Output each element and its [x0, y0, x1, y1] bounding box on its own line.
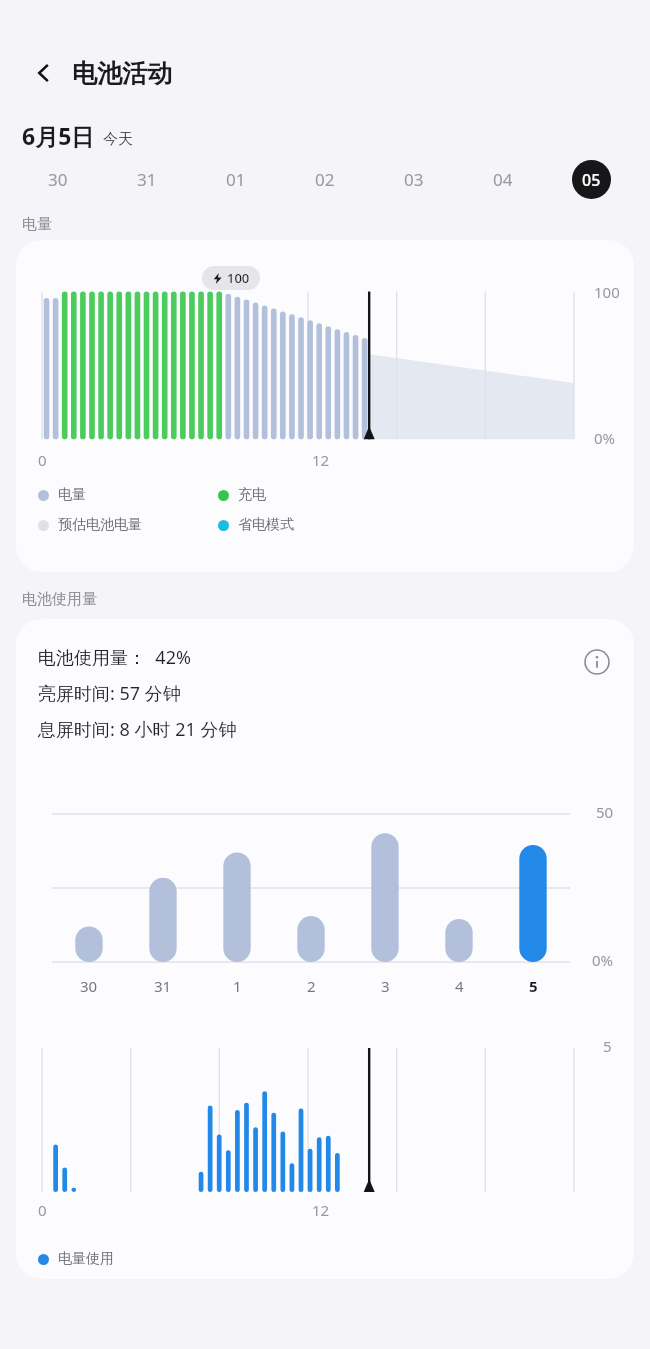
staticText: 电量使用: [58, 1250, 114, 1268]
staticText: 省电模式: [238, 516, 294, 534]
button[interactable]: 05: [547, 153, 636, 205]
staticText: 息屏时间: 8 小时 21 分钟: [38, 717, 237, 742]
staticText: 电池活动: [72, 58, 172, 89]
staticText: 31: [154, 976, 172, 996]
button[interactable]: 100: [16, 240, 634, 572]
staticText: 0%: [594, 428, 616, 448]
staticText: 30: [48, 168, 68, 191]
staticText: 电量: [58, 486, 86, 504]
button[interactable]: 03: [369, 153, 458, 205]
staticText: 2: [307, 976, 316, 996]
staticText: 12: [312, 450, 330, 470]
button[interactable]: 04: [458, 153, 547, 205]
staticText: 6月5日: [22, 120, 95, 151]
staticText: 0%: [592, 950, 614, 970]
staticText: 电池使用量： 42%: [38, 645, 191, 670]
staticText: 50: [596, 802, 614, 822]
staticText: 5: [603, 1036, 612, 1056]
staticText: 今天: [103, 130, 133, 149]
staticText: 5: [529, 976, 538, 996]
staticText: 100: [594, 282, 620, 302]
staticText: 4: [455, 976, 464, 996]
staticText: 04: [493, 168, 513, 191]
staticText: 01: [226, 168, 246, 191]
button[interactable]: 01: [191, 153, 280, 205]
button[interactable]: 02: [280, 153, 369, 205]
staticText: 充电: [238, 486, 266, 504]
button[interactable]: 30: [14, 153, 102, 205]
staticText: 电池使用量: [22, 590, 97, 609]
staticText: 0: [38, 450, 47, 470]
staticText: 31: [137, 168, 157, 191]
staticText: 12: [312, 1200, 330, 1220]
staticText: 1: [233, 976, 242, 996]
button[interactable]: Info: [580, 645, 614, 679]
staticText: 05: [582, 169, 601, 191]
staticText: 0: [38, 1200, 47, 1220]
button[interactable]: 31: [102, 153, 191, 205]
staticText: 电量: [22, 215, 52, 234]
staticText: 100: [227, 269, 250, 287]
staticText: 3: [381, 976, 390, 996]
button[interactable]: Back: [22, 51, 66, 95]
staticText: 预估电池电量: [58, 516, 142, 534]
staticText: 02: [315, 168, 335, 191]
staticText: 30: [80, 976, 98, 996]
staticText: 亮屏时间: 57 分钟: [38, 681, 181, 706]
staticText: 03: [404, 168, 424, 191]
